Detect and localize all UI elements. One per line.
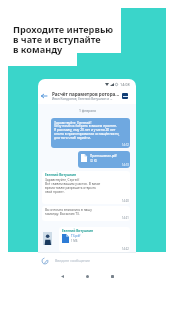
- staticText: 14:08: [120, 82, 130, 87]
- button[interactable]: Chat info: [121, 92, 129, 100]
- staticText: Расчёт параметров ротора...: [52, 91, 120, 97]
- button[interactable]: Back: [39, 91, 49, 101]
- staticText: 14:12: [122, 143, 129, 147]
- button[interactable]: Евгений Витушкин: [59, 227, 130, 252]
- button[interactable]: Здравствуйте, Евгений! Хочу помочь забра…: [51, 118, 130, 148]
- button[interactable]: Attach file: [40, 256, 50, 266]
- staticText: Здравствуйте, Евгений! Хочу помочь забра…: [54, 120, 120, 140]
- button[interactable]: Home: [82, 271, 92, 281]
- staticText: Вы отлично вписались в нашу команду. Выс…: [45, 208, 92, 216]
- staticText: Евгений Витушкин: [62, 229, 94, 233]
- staticText: ТЗ.pdf: [71, 234, 81, 238]
- staticText: Здравствуйте, Сергей! Всё скажем вашим у…: [45, 178, 101, 194]
- staticText: 1 МБ: [71, 239, 78, 243]
- staticText: 32 КБ: [90, 159, 98, 163]
- button[interactable]: Back: [57, 271, 67, 281]
- staticText: 14:20: [122, 199, 129, 203]
- staticText: Проходите интервью в чате и вступайте в …: [13, 23, 114, 56]
- staticText: Приглашение.pdf: [90, 154, 117, 158]
- button[interactable]: Евгений Витушкин: [42, 171, 130, 204]
- staticText: Евгений Витушкин: [45, 173, 77, 177]
- button[interactable]: Вы отлично вписались в нашу команду. Выс…: [42, 206, 130, 221]
- button[interactable]: Recent apps: [107, 271, 117, 281]
- staticText: Введите сообщение: [55, 258, 91, 263]
- staticText: 1 февраля: [79, 108, 96, 113]
- staticText: 14:22: [122, 247, 129, 251]
- button[interactable]: Приглашение.pdf: [78, 151, 130, 168]
- staticText: 14:21: [122, 216, 129, 220]
- staticText: Иван Кондратов, Евгений Витушкин и ...: [52, 97, 113, 101]
- staticText: 14:13: [122, 163, 129, 167]
